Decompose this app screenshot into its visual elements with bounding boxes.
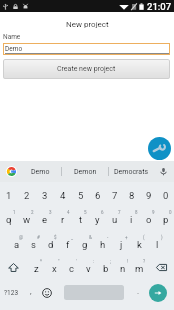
button[interactable]: a — [8, 231, 25, 256]
staticText: o — [146, 214, 152, 225]
button[interactable]: Enter — [142, 280, 174, 305]
staticText: y — [95, 214, 100, 225]
button[interactable]: q — [0, 206, 18, 231]
button[interactable]: . — [134, 280, 142, 305]
button[interactable]: Build — [148, 137, 171, 160]
staticText: ) — [161, 235, 163, 240]
button[interactable]: w — [18, 206, 36, 231]
staticText: 9 — [146, 190, 152, 201]
staticText: ( — [143, 235, 145, 240]
staticText: 3 — [49, 210, 52, 215]
staticText: m — [135, 263, 144, 274]
button[interactable]: c — [63, 255, 80, 280]
button[interactable]: b — [97, 255, 114, 280]
staticText: g — [82, 239, 88, 250]
staticText: . — [137, 287, 140, 296]
button[interactable]: s — [25, 231, 42, 256]
staticText: 3 — [42, 190, 48, 201]
staticText: x — [52, 263, 57, 274]
button[interactable]: m — [131, 255, 148, 280]
button[interactable]: , — [22, 280, 39, 305]
button[interactable]: 2 — [18, 182, 36, 207]
button[interactable]: Demon — [62, 161, 108, 182]
button[interactable]: x — [45, 255, 63, 280]
button[interactable]: p — [157, 206, 174, 231]
button[interactable]: f — [59, 231, 76, 256]
staticText: Create new project — [57, 65, 116, 73]
button[interactable]: Emoji — [39, 280, 55, 305]
staticText: r — [61, 214, 65, 225]
staticText: a — [14, 239, 20, 250]
staticText: Name — [3, 33, 21, 41]
button[interactable]: 9 — [140, 182, 157, 207]
button[interactable]: ?123 — [0, 280, 22, 305]
button[interactable]: 6 — [89, 182, 106, 207]
button[interactable]: Democrats — [109, 161, 153, 182]
button[interactable]: t — [72, 206, 89, 231]
button[interactable]: Shift — [0, 255, 27, 280]
button[interactable]: o — [140, 206, 157, 231]
staticText: f — [66, 239, 70, 250]
button[interactable]: l — [148, 231, 166, 256]
staticText: # — [37, 235, 40, 240]
button[interactable]: 3 — [36, 182, 54, 207]
button[interactable]: n — [114, 255, 131, 280]
staticText: i — [130, 214, 133, 225]
staticText: v — [86, 263, 91, 274]
button[interactable]: 7 — [106, 182, 123, 207]
staticText: n — [120, 263, 126, 274]
button[interactable]: d — [42, 231, 59, 256]
button[interactable]: r — [54, 206, 72, 231]
staticText: _ — [71, 235, 74, 240]
staticText: Demo — [5, 45, 23, 53]
button[interactable]: Demo — [19, 161, 61, 182]
button[interactable]: 5 — [72, 182, 89, 207]
staticText: * — [40, 259, 42, 264]
staticText: " — [58, 259, 60, 264]
staticText: j — [120, 239, 123, 250]
staticText: , — [30, 287, 32, 296]
staticText: 1 — [13, 210, 16, 215]
staticText: e — [42, 214, 48, 225]
staticText: ; — [110, 259, 111, 264]
button[interactable]: Voice input — [153, 161, 174, 182]
staticText: 5 — [78, 190, 84, 201]
staticText: h — [100, 239, 106, 250]
button[interactable]: 0 — [157, 182, 174, 207]
button[interactable]: j — [112, 231, 130, 256]
staticText: Demo — [31, 168, 50, 176]
button[interactable]: v — [80, 255, 97, 280]
staticText: 8 — [135, 210, 138, 215]
staticText: 21:07 — [147, 1, 172, 12]
staticText: $ — [54, 235, 57, 240]
button[interactable]: 1 — [0, 182, 18, 207]
button[interactable]: u — [106, 206, 123, 231]
staticText: c — [69, 263, 74, 274]
button[interactable]: e — [36, 206, 54, 231]
staticText: @ — [19, 235, 24, 240]
button[interactable]: Demo — [3, 43, 170, 55]
staticText: 7 — [112, 190, 118, 201]
staticText: q — [6, 214, 12, 225]
staticText: 7 — [118, 210, 121, 215]
button[interactable]: 4 — [54, 182, 72, 207]
staticText: : — [93, 259, 95, 264]
button[interactable]: k — [130, 231, 148, 256]
staticText: w — [23, 214, 31, 225]
button[interactable]: 8 — [123, 182, 140, 207]
staticText: 6 — [101, 210, 104, 215]
staticText: Demon — [74, 168, 97, 176]
button[interactable]: h — [94, 231, 112, 256]
staticText: Democrats — [114, 168, 149, 176]
button[interactable]: z — [27, 255, 45, 280]
button[interactable]: Create new project — [3, 59, 170, 79]
button[interactable]: y — [89, 206, 106, 231]
staticText: 8 — [129, 190, 135, 201]
button[interactable]: g — [76, 231, 94, 256]
staticText: ! — [127, 259, 129, 264]
staticText: & — [89, 235, 92, 240]
staticText: 9 — [152, 210, 155, 215]
button[interactable]: i — [123, 206, 140, 231]
button[interactable]: Space — [55, 280, 134, 305]
button[interactable]: Backspace — [148, 255, 174, 280]
